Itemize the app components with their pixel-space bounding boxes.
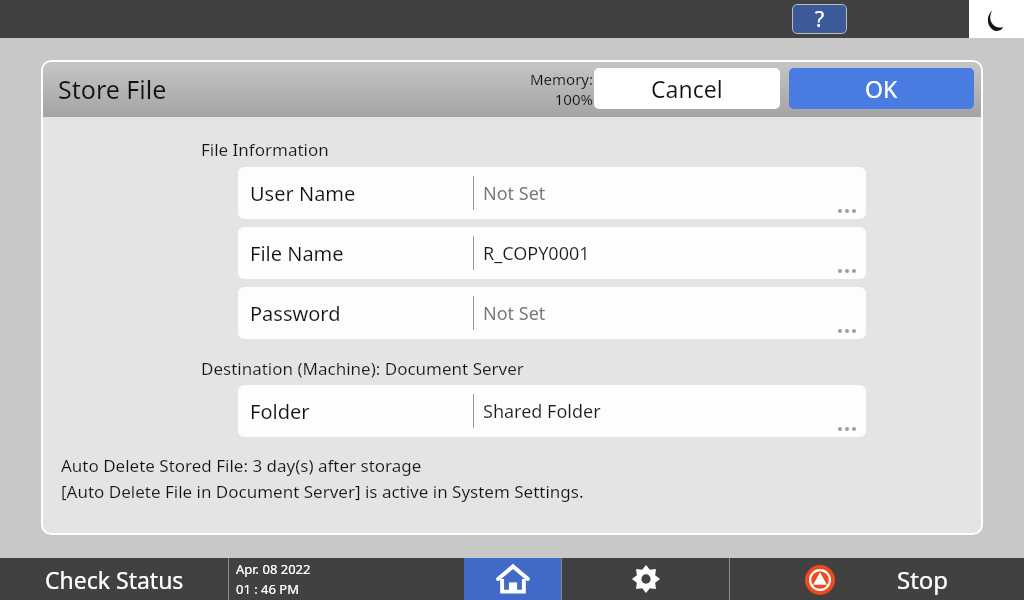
staticText: 01 : 46 PM	[236, 580, 300, 598]
staticText: User Name	[250, 180, 356, 207]
staticText: Memory:	[529, 69, 593, 89]
button[interactable]: Sleep mode	[969, 0, 1024, 38]
button[interactable]: Folder	[238, 385, 866, 437]
button[interactable]: Home	[464, 558, 561, 600]
button[interactable]: Cancel	[594, 68, 780, 109]
button[interactable]: Help	[792, 4, 847, 34]
button[interactable]: Check Status	[0, 558, 228, 600]
staticText: OK	[865, 73, 898, 104]
staticText: [Auto Delete File in Document Server] is…	[61, 480, 584, 503]
staticText: R_COPY0001	[483, 241, 590, 266]
button[interactable]: OK	[789, 68, 974, 109]
staticText: Password	[250, 300, 341, 327]
button[interactable]: File Name	[238, 227, 866, 279]
staticText: Cancel	[651, 73, 723, 104]
button[interactable]: Password	[238, 287, 866, 339]
staticText: Not Set	[483, 181, 546, 206]
staticText: Check Status	[45, 564, 184, 595]
button[interactable]: User Name	[238, 167, 866, 219]
button[interactable]: Stop	[730, 558, 1024, 600]
staticText: ?	[815, 5, 825, 34]
staticText: Apr. 08 2022	[236, 560, 311, 578]
staticText: Folder	[250, 398, 310, 425]
staticText: Not Set	[483, 301, 546, 326]
staticText: Shared Folder	[483, 399, 601, 424]
staticText: 100%	[554, 89, 593, 109]
staticText: Auto Delete Stored File: 3 day(s) after …	[61, 454, 422, 477]
button[interactable]: Settings	[562, 558, 729, 600]
staticText: File Name	[250, 240, 344, 267]
staticText: File Information	[201, 138, 329, 161]
staticText: Destination (Machine): Document Server	[201, 357, 524, 380]
staticText: Stop	[897, 563, 949, 596]
staticText: Store File	[58, 72, 167, 106]
